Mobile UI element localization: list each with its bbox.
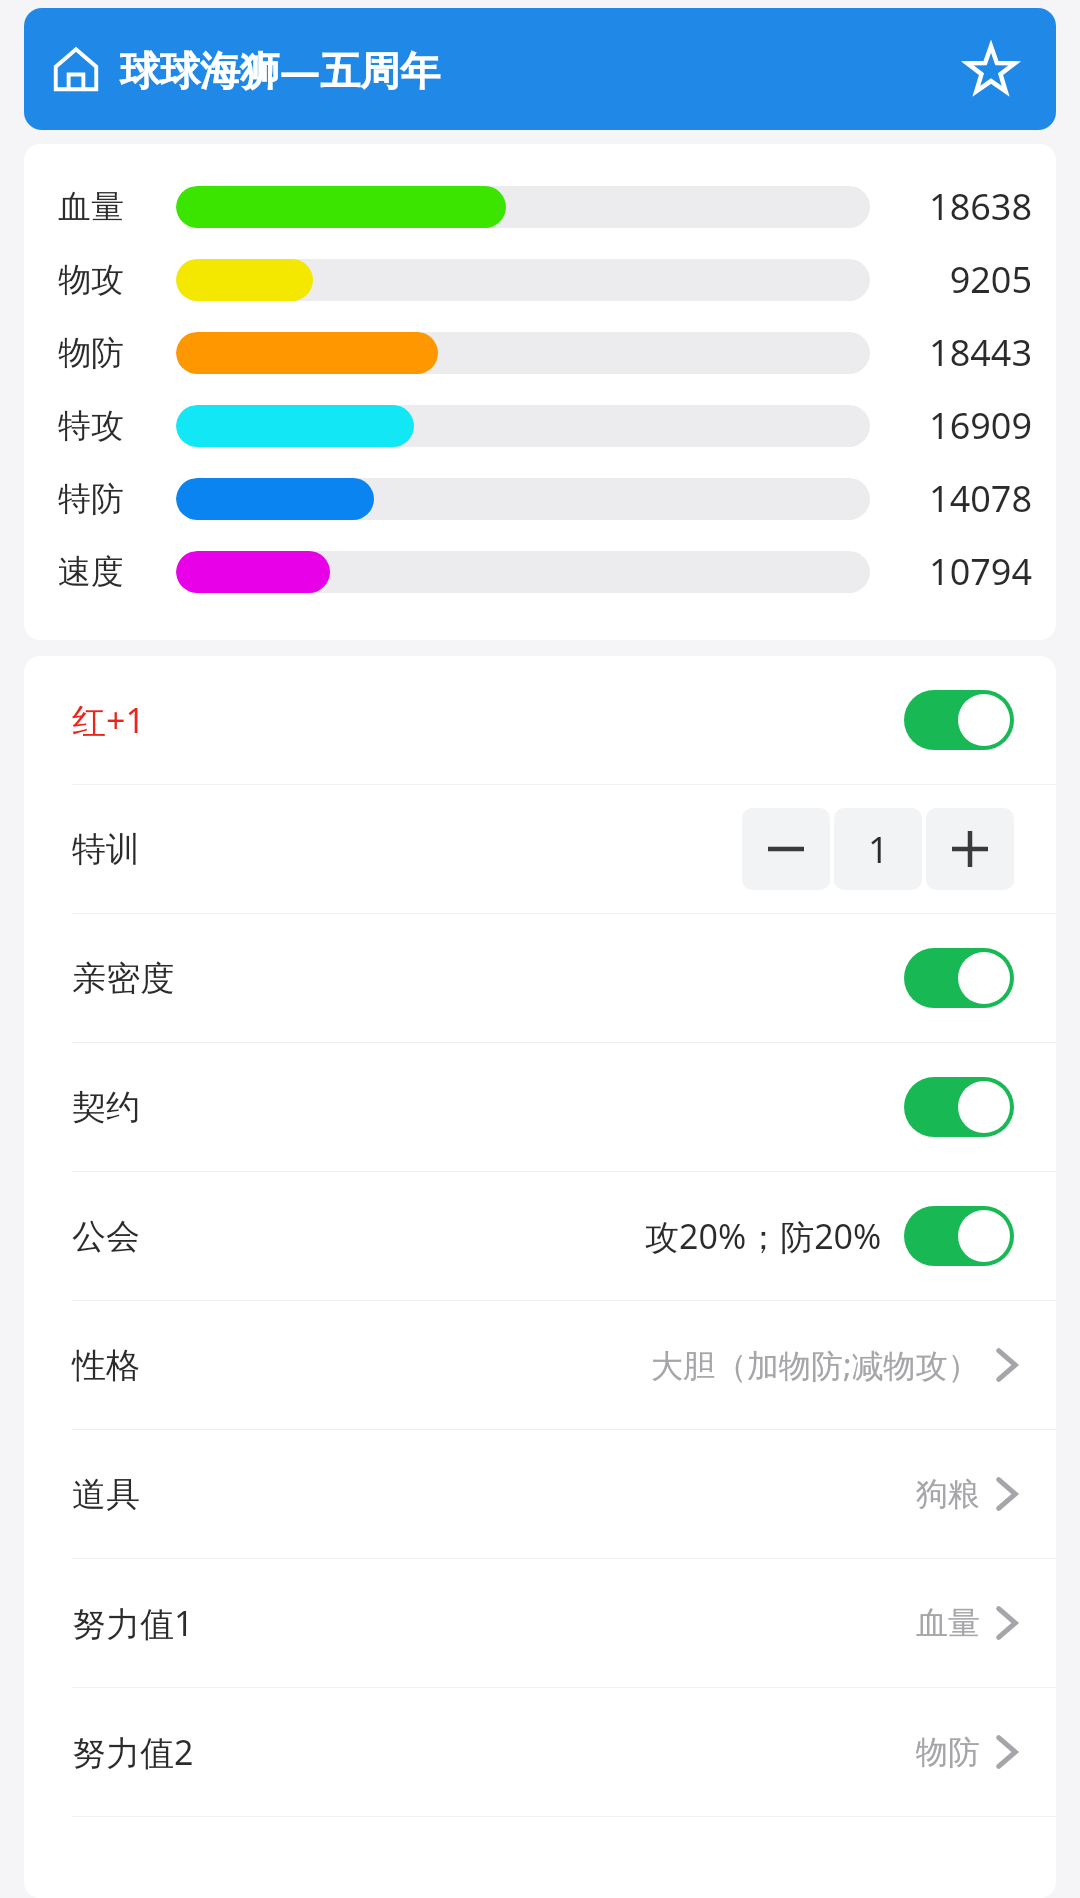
staticText: 速度	[58, 551, 124, 593]
button[interactable]: 特攻	[24, 389, 1056, 462]
staticText: 亲密度	[72, 957, 174, 1000]
button[interactable]: 性格	[24, 1301, 1056, 1429]
staticText: 16909	[896, 401, 1032, 450]
staticText: 大胆（加物防;减物攻）	[651, 1343, 980, 1387]
button[interactable]: 红+1	[24, 656, 1056, 784]
staticText: 特攻	[58, 405, 124, 447]
staticText: 狗粮	[916, 1474, 980, 1514]
staticText: 努力值1	[72, 1600, 194, 1646]
button[interactable]: 速度	[24, 535, 1056, 608]
button[interactable]: 契约	[24, 1043, 1056, 1171]
staticText: 物防	[58, 332, 124, 374]
button[interactable]: 特防	[24, 462, 1056, 535]
button[interactable]: Home	[50, 43, 102, 95]
button[interactable]: Favorite	[960, 38, 1022, 100]
staticText: 努力值2	[72, 1729, 194, 1775]
button[interactable]: Toggle on	[904, 948, 1014, 1008]
staticText: 公会	[72, 1215, 140, 1258]
staticText: 红+1	[72, 697, 145, 743]
button[interactable]: 亲密度	[24, 914, 1056, 1042]
staticText: 18443	[896, 328, 1032, 377]
other: Open 努力值2	[994, 1732, 1020, 1772]
staticText: 14078	[896, 474, 1032, 523]
button[interactable]: Decrease	[742, 808, 830, 890]
staticText: 10794	[896, 547, 1032, 596]
staticText: 物攻	[58, 259, 124, 301]
button[interactable]: 血量	[24, 170, 1056, 243]
staticText: 球球海狮—五周年	[120, 42, 440, 97]
staticText: 1	[868, 825, 889, 874]
staticText: 物防	[916, 1732, 980, 1772]
button[interactable]: Toggle on	[904, 690, 1014, 750]
button[interactable]: Increase	[926, 808, 1014, 890]
staticText: 特训	[72, 828, 140, 871]
button[interactable]: Toggle on	[904, 1077, 1014, 1137]
staticText: 攻20%；防20%	[645, 1213, 882, 1259]
other: Open 性格	[994, 1345, 1020, 1385]
staticText: 18638	[896, 182, 1032, 231]
staticText: 道具	[72, 1473, 140, 1516]
other: Open 努力值1	[994, 1603, 1020, 1643]
button[interactable]: 公会	[24, 1172, 1056, 1300]
staticText: 契约	[72, 1086, 140, 1129]
button[interactable]: 道具	[24, 1430, 1056, 1558]
button[interactable]: 物攻	[24, 243, 1056, 316]
button[interactable]: Toggle on	[904, 1206, 1014, 1266]
button[interactable]: 努力值1	[24, 1559, 1056, 1687]
staticText: 性格	[72, 1344, 140, 1387]
button[interactable]: 努力值2	[24, 1688, 1056, 1816]
staticText: 特防	[58, 478, 124, 520]
other: Open 道具	[994, 1474, 1020, 1514]
button[interactable]: 物防	[24, 316, 1056, 389]
staticText: 血量	[58, 186, 124, 228]
staticText: 血量	[916, 1603, 980, 1643]
staticText: 9205	[896, 255, 1032, 304]
